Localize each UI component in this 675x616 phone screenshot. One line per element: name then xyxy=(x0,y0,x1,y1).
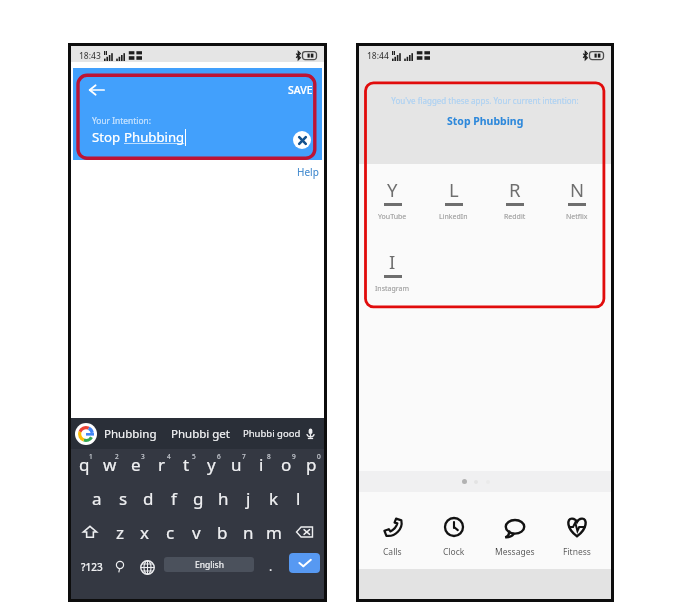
staticText: Phubbi get xyxy=(171,426,230,442)
staticText: SAVE xyxy=(288,83,313,97)
button[interactable]: m xyxy=(261,515,287,549)
button[interactable]: Voice input xyxy=(305,428,316,439)
staticText: You've flagged these apps. Your current … xyxy=(391,95,579,106)
button[interactable]: SAVE xyxy=(284,80,322,100)
staticText: I xyxy=(389,249,396,274)
staticText: o xyxy=(281,453,292,476)
staticText: m xyxy=(266,521,282,544)
button[interactable]: t xyxy=(174,445,199,481)
staticText: 2 xyxy=(115,452,119,461)
button[interactable]: z xyxy=(107,515,132,549)
staticText: 7 xyxy=(242,452,246,461)
staticText: r xyxy=(158,453,166,476)
button[interactable]: Emoji xyxy=(109,549,131,585)
button[interactable]: l xyxy=(286,481,311,515)
button[interactable]: a xyxy=(84,481,110,515)
staticText: q xyxy=(79,453,90,476)
button[interactable]: Messages xyxy=(484,516,546,558)
button[interactable]: w xyxy=(97,445,123,481)
staticText: Messages xyxy=(495,546,535,558)
button[interactable]: Phubbing xyxy=(104,426,157,442)
button[interactable]: x xyxy=(132,515,157,549)
staticText: k xyxy=(269,487,279,510)
staticText: Instagram xyxy=(375,284,410,294)
button[interactable]: f xyxy=(161,481,186,515)
staticText: 0 xyxy=(317,452,321,461)
button[interactable]: e xyxy=(123,445,149,481)
staticText: YouTube xyxy=(378,212,407,222)
staticText: y xyxy=(207,453,216,476)
button[interactable]: r xyxy=(149,445,174,481)
staticText: 3 xyxy=(141,452,145,461)
staticText: Your Intention: xyxy=(92,115,151,126)
button[interactable]: Calls xyxy=(362,516,423,558)
button[interactable]: b xyxy=(209,515,235,549)
staticText: 8 xyxy=(267,452,271,461)
staticText: 5 xyxy=(192,452,196,461)
button[interactable]: v xyxy=(183,515,209,549)
staticText: LinkedIn xyxy=(439,212,468,222)
button[interactable]: I xyxy=(362,249,423,294)
button[interactable]: h xyxy=(211,481,236,515)
staticText: 18:44 xyxy=(367,50,389,62)
button[interactable]: k xyxy=(261,481,286,515)
staticText: 6 xyxy=(217,452,221,461)
staticText: f xyxy=(171,487,177,510)
staticText: z xyxy=(116,521,124,544)
button[interactable]: n xyxy=(235,515,261,549)
button[interactable]: Fitness xyxy=(546,516,608,558)
staticText: v xyxy=(192,521,201,544)
staticText: u xyxy=(231,453,242,476)
button[interactable]: Clear text xyxy=(293,131,311,149)
staticText: Reddit xyxy=(504,212,526,222)
staticText: e xyxy=(131,453,141,476)
button[interactable]: . xyxy=(261,549,281,585)
button[interactable]: ?123 xyxy=(78,549,105,585)
button[interactable]: L xyxy=(423,177,484,222)
staticText: N xyxy=(570,177,585,202)
button[interactable]: s xyxy=(110,481,136,515)
staticText: a xyxy=(92,487,102,510)
button[interactable]: Y xyxy=(362,177,423,222)
button[interactable]: Phubbi get xyxy=(171,426,230,442)
staticText: p xyxy=(306,453,317,476)
button[interactable]: q xyxy=(71,445,97,481)
button[interactable]: Phubbi good xyxy=(243,427,301,440)
button[interactable]: Clock xyxy=(423,516,484,558)
button[interactable]: Back xyxy=(88,83,105,97)
staticText: h xyxy=(218,487,229,510)
staticText: d xyxy=(143,487,154,510)
button[interactable]: Google search xyxy=(75,423,97,445)
staticText: 18:43 xyxy=(79,50,101,62)
button[interactable]: Help xyxy=(291,161,324,183)
button[interactable]: d xyxy=(136,481,161,515)
button[interactable]: English xyxy=(164,557,254,572)
button[interactable]: c xyxy=(157,515,183,549)
staticText: Fitness xyxy=(563,546,591,558)
button[interactable]: g xyxy=(186,481,211,515)
button[interactable]: j xyxy=(236,481,261,515)
button[interactable]: R xyxy=(484,177,546,222)
staticText: l xyxy=(296,487,301,510)
button[interactable]: Backspace xyxy=(287,515,322,549)
button[interactable]: p xyxy=(299,445,324,481)
staticText: g xyxy=(193,487,204,510)
staticText: Netflix xyxy=(566,212,588,222)
staticText: 1 xyxy=(89,452,93,461)
button[interactable]: o xyxy=(274,445,299,481)
staticText: 4 xyxy=(167,452,171,461)
staticText: Calls xyxy=(383,546,402,558)
staticText: b xyxy=(217,521,228,544)
staticText: i xyxy=(259,453,264,476)
button[interactable]: y xyxy=(199,445,224,481)
staticText: Stop Phubbing xyxy=(447,114,524,128)
button[interactable]: i xyxy=(249,445,274,481)
button[interactable]: Enter xyxy=(289,553,320,573)
staticText: R xyxy=(509,177,521,202)
staticText: n xyxy=(243,521,254,544)
button[interactable]: N xyxy=(546,177,608,222)
button[interactable]: Change language xyxy=(135,549,159,585)
staticText: 9 xyxy=(292,452,296,461)
button[interactable]: u xyxy=(224,445,249,481)
button[interactable]: Shift xyxy=(73,515,107,549)
